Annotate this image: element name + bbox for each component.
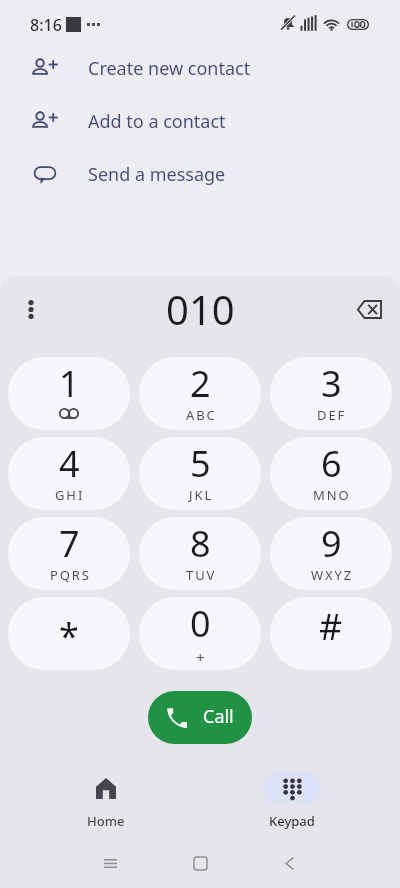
staticText: 4	[59, 439, 80, 488]
button[interactable]: 5	[139, 437, 261, 510]
button[interactable]: Call	[148, 691, 252, 744]
staticText: PQRS	[50, 566, 91, 584]
staticText: 2	[190, 359, 211, 408]
staticText: ABC	[186, 406, 217, 424]
staticText: 7	[59, 519, 80, 568]
staticText: Call	[203, 704, 234, 729]
button[interactable]: #	[270, 597, 392, 670]
button[interactable]: 0	[139, 597, 261, 670]
button[interactable]: Back	[267, 841, 311, 885]
staticText: 5	[190, 439, 211, 488]
button[interactable]: Create new contact	[0, 42, 400, 95]
button[interactable]: Home	[56, 766, 156, 830]
button[interactable]: Backspace	[347, 287, 391, 331]
staticText: 9	[321, 519, 342, 568]
staticText: *	[59, 611, 79, 660]
button[interactable]: More options	[9, 287, 53, 331]
button[interactable]: Add to a contact	[0, 95, 400, 148]
staticText: 1	[59, 359, 80, 408]
button[interactable]: 4	[8, 437, 130, 510]
button[interactable]: 1	[8, 357, 130, 430]
button[interactable]: Home	[178, 841, 222, 885]
staticText: 010	[166, 282, 235, 336]
staticText: Add to a contact	[88, 109, 226, 134]
button[interactable]: 6	[270, 437, 392, 510]
staticText: Home	[87, 812, 125, 830]
staticText: DEF	[317, 406, 347, 424]
staticText: TUV	[186, 566, 217, 584]
button[interactable]: *	[8, 597, 130, 670]
staticText: 8	[190, 519, 211, 568]
staticText: +	[196, 647, 205, 667]
button[interactable]: Recent apps	[88, 841, 132, 885]
staticText: #	[319, 602, 343, 651]
staticText: MNO	[313, 486, 351, 504]
staticText: Keypad	[269, 812, 315, 830]
button[interactable]: 2	[139, 357, 261, 430]
staticText: GHI	[55, 486, 85, 504]
staticText: WXYZ	[311, 566, 354, 584]
staticText: 6	[321, 439, 342, 488]
staticText: Send a message	[88, 162, 226, 187]
button[interactable]: 3	[270, 357, 392, 430]
button[interactable]: 8	[139, 517, 261, 590]
button[interactable]: 7	[8, 517, 130, 590]
button[interactable]: Send a message	[0, 148, 400, 201]
staticText: 8:16	[30, 14, 62, 36]
button[interactable]: 9	[270, 517, 392, 590]
button[interactable]: Keypad	[242, 766, 342, 830]
staticText: JKL	[189, 486, 214, 504]
staticText: Create new contact	[88, 56, 251, 81]
staticText: 3	[321, 359, 342, 408]
staticText: 0	[190, 599, 211, 648]
